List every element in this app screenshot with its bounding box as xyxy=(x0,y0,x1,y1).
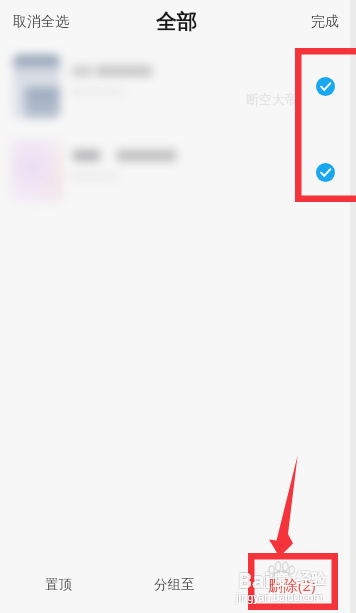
button[interactable]: 完成 xyxy=(311,13,339,31)
staticText: 经验 xyxy=(296,570,326,589)
staticText: jingyan.baidu.com xyxy=(236,590,323,604)
staticText: 经验 xyxy=(297,571,327,590)
button[interactable]: 取消全选 xyxy=(13,13,69,31)
staticText: 删除(2) xyxy=(268,575,316,595)
button[interactable]: Selected xyxy=(316,77,335,96)
staticText: 断空大帝 xyxy=(246,91,298,107)
staticText: 置顶 xyxy=(45,576,72,593)
staticText: 完成 xyxy=(311,13,339,31)
staticText: 度 xyxy=(273,571,288,590)
staticText: 取消全选 xyxy=(13,13,69,31)
staticText: 经验 xyxy=(296,570,326,589)
staticText: 度 xyxy=(272,570,287,589)
staticText: Bai xyxy=(237,567,270,596)
staticText: jingyan.baidu.com xyxy=(235,591,322,605)
staticText: Bai xyxy=(239,567,272,596)
button[interactable]: Selected xyxy=(316,163,335,182)
staticText: 度 xyxy=(272,572,287,591)
button[interactable]: 删除(2) xyxy=(233,560,350,613)
staticText: 经验 xyxy=(295,571,325,590)
staticText: 经验 xyxy=(297,569,327,588)
staticText: 度 xyxy=(273,571,288,590)
staticText: 度 xyxy=(274,572,289,591)
staticText: Bai xyxy=(239,565,272,594)
staticText: jingyan.baidu.com xyxy=(237,589,324,603)
staticText: Bai xyxy=(238,566,271,595)
button[interactable]: 置顶 xyxy=(0,560,116,613)
staticText: Bai xyxy=(237,565,270,594)
button[interactable]: 分组至 xyxy=(116,560,233,613)
staticText: jingyan.baidu.com xyxy=(237,591,324,605)
staticText: 全部 xyxy=(156,9,197,35)
staticText: 分组至 xyxy=(154,576,195,593)
staticText: 度 xyxy=(274,570,289,589)
staticText: 经验 xyxy=(295,569,325,588)
staticText: Bai xyxy=(238,566,271,595)
staticText: jingyan.baidu.com xyxy=(236,590,323,604)
staticText: jingyan.baidu.com xyxy=(235,589,322,603)
